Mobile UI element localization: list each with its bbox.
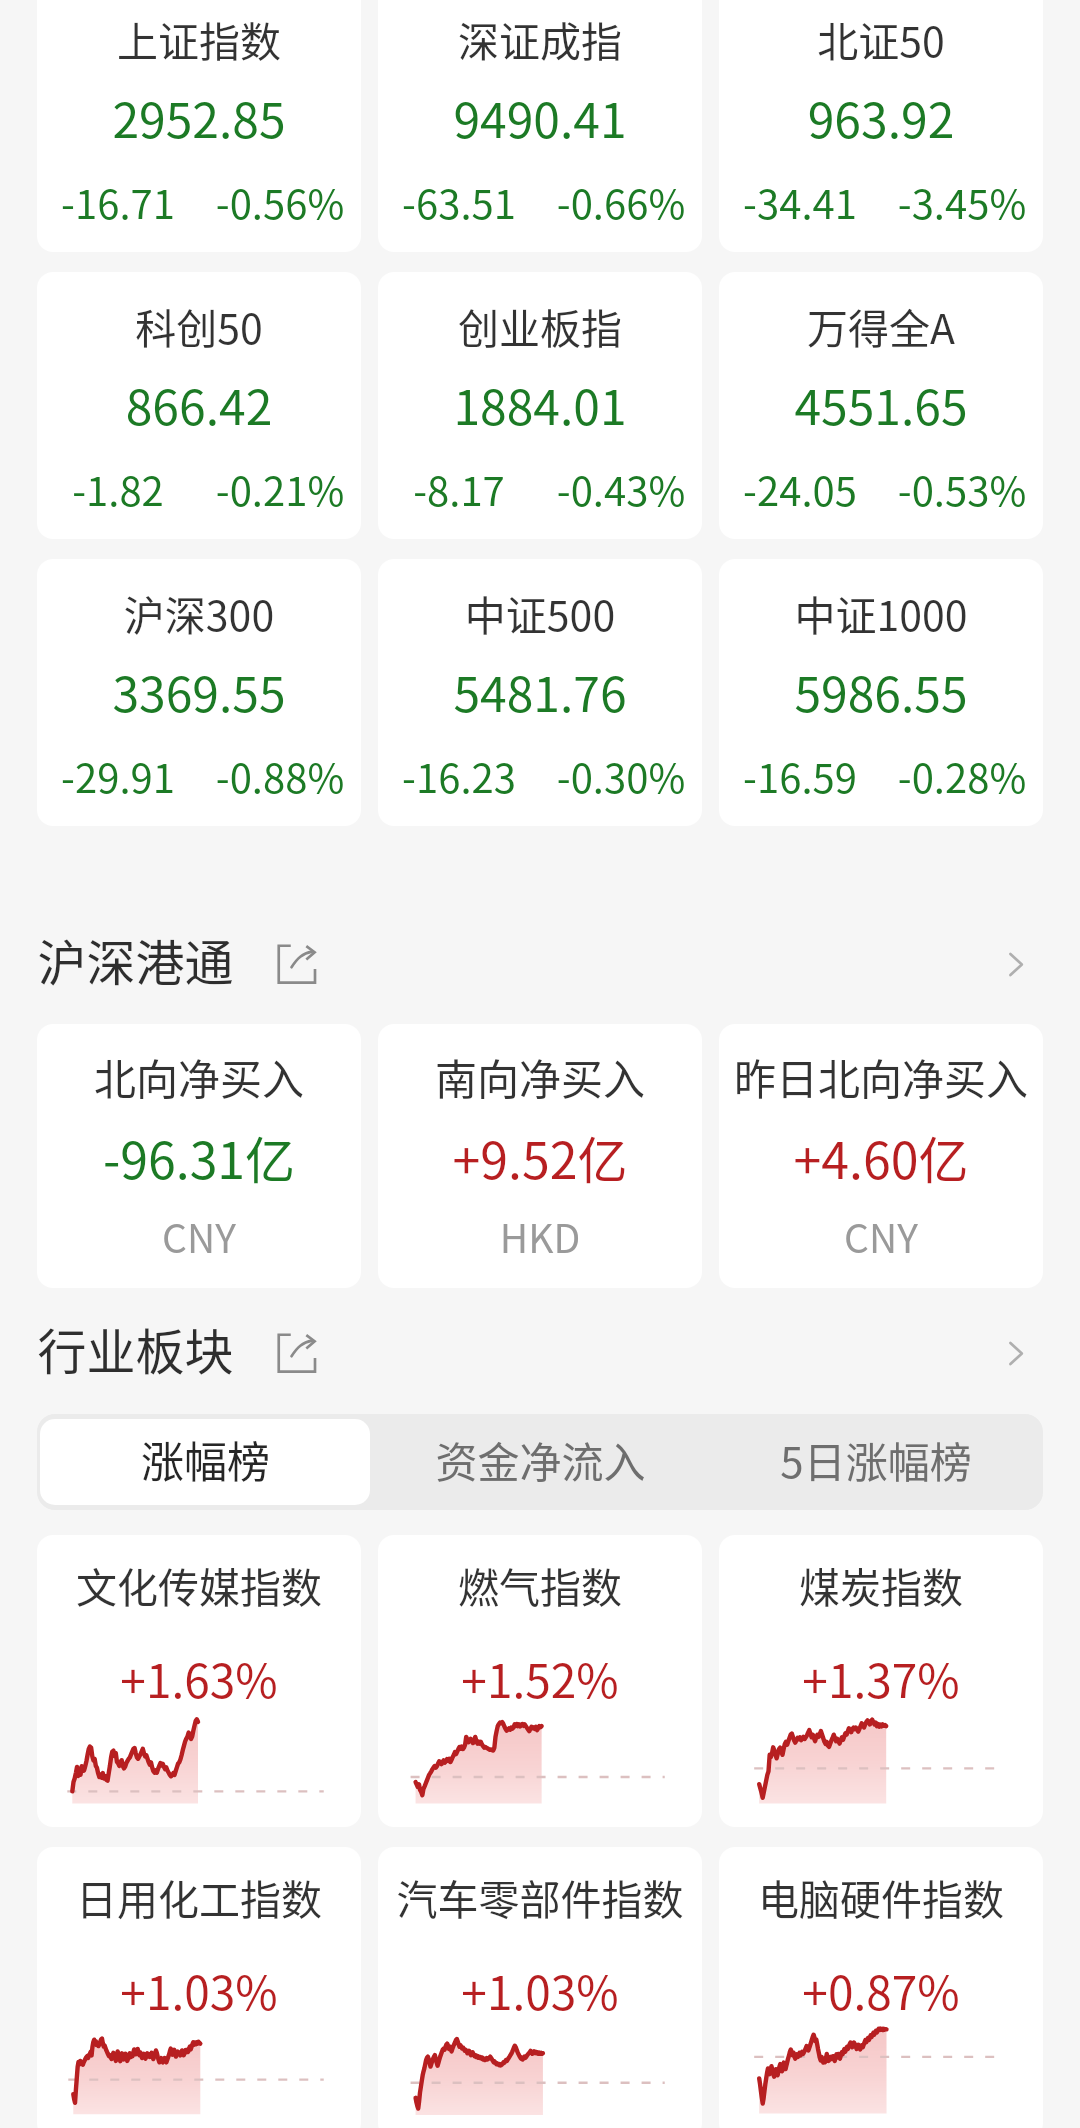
staticText: -96.31亿 [37,1121,361,1193]
staticText: 9490.41 [378,82,702,152]
button[interactable]: 上证指数 [37,0,361,252]
staticText: +1.37% [719,1645,1043,1712]
staticText: 南向净买入 [378,1046,702,1107]
staticText: 5986.55 [719,656,1043,726]
staticText: 3369.55 [37,656,361,726]
button[interactable]: 深证成指 [378,0,702,252]
button[interactable]: 北证50 [719,0,1043,252]
staticText: 科创50 [37,296,361,355]
button[interactable]: Share [269,937,323,991]
button[interactable]: 中证1000 [719,559,1043,826]
staticText: -63.51 [378,173,540,231]
button[interactable]: 电脑硬件指数 [719,1847,1043,2128]
button[interactable]: 文化传媒指数 [37,1535,361,1827]
staticText: -34.41 [719,173,881,231]
staticText: 沪深300 [37,583,361,642]
button[interactable]: 万得全A [719,272,1043,539]
staticText: +9.52亿 [378,1121,702,1193]
button[interactable]: 5日涨幅榜 [708,1414,1043,1510]
button[interactable]: More [991,1328,1041,1378]
staticText: -0.21% [199,460,361,518]
staticText: 燃气指数 [378,1555,702,1614]
staticText: 昨日北向净买入 [719,1046,1043,1107]
staticText: -0.66% [540,173,702,231]
button[interactable]: 中证500 [378,559,702,826]
staticText: 电脑硬件指数 [719,1867,1043,1926]
staticText: 上证指数 [37,9,361,68]
staticText: -16.71 [37,173,199,231]
staticText: 汽车零部件指数 [378,1867,702,1926]
staticText: 资金净流入 [435,1429,646,1490]
staticText: -3.45% [881,173,1043,231]
staticText: 866.42 [37,369,361,439]
staticText: CNY [37,1208,361,1264]
staticText: -0.56% [199,173,361,231]
button[interactable]: 沪深300 [37,559,361,826]
button[interactable]: 北向净买入 [37,1024,361,1288]
staticText: 中证1000 [719,583,1043,642]
button[interactable]: More [991,939,1041,989]
staticText: 行业板块 [37,1313,234,1384]
staticText: 文化传媒指数 [37,1555,361,1614]
button[interactable]: 资金净流入 [373,1414,708,1510]
staticText: -29.91 [37,747,199,805]
button[interactable]: Share [269,1326,323,1380]
staticText: 万得全A [719,296,1043,355]
button[interactable]: 南向净买入 [378,1024,702,1288]
button[interactable]: 创业板指 [378,272,702,539]
button[interactable]: 汽车零部件指数 [378,1847,702,2128]
staticText: -0.88% [199,747,361,805]
staticText: -16.59 [719,747,881,805]
staticText: 煤炭指数 [719,1555,1043,1614]
staticText: 涨幅榜 [141,1428,270,1490]
button[interactable]: 涨幅榜 [40,1419,370,1505]
staticText: +1.63% [37,1645,361,1712]
button[interactable]: 燃气指数 [378,1535,702,1827]
staticText: 沪深港通 [37,924,234,995]
staticText: -24.05 [719,460,881,518]
staticText: +0.87% [719,1957,1043,2024]
staticText: -8.17 [378,460,540,518]
staticText: -1.82 [37,460,199,518]
staticText: 4551.65 [719,369,1043,439]
staticText: -16.23 [378,747,540,805]
staticText: +1.52% [378,1645,702,1712]
staticText: +4.60亿 [719,1121,1043,1193]
staticText: +1.03% [37,1957,361,2024]
staticText: -0.28% [881,747,1043,805]
staticText: 创业板指 [378,296,702,355]
button[interactable]: 煤炭指数 [719,1535,1043,1827]
button[interactable]: 科创50 [37,272,361,539]
staticText: -0.53% [881,460,1043,518]
staticText: -0.30% [540,747,702,805]
staticText: 北向净买入 [37,1046,361,1107]
staticText: +1.03% [378,1957,702,2024]
staticText: 5日涨幅榜 [780,1429,972,1490]
staticText: -0.43% [540,460,702,518]
staticText: 中证500 [378,583,702,642]
staticText: 北证50 [719,9,1043,68]
staticText: 深证成指 [378,9,702,68]
staticText: 1884.01 [378,369,702,439]
staticText: 5481.76 [378,656,702,726]
button[interactable]: 日用化工指数 [37,1847,361,2128]
staticText: 2952.85 [37,82,361,152]
staticText: HKD [378,1208,702,1264]
staticText: CNY [719,1208,1043,1264]
staticText: 963.92 [719,82,1043,152]
button[interactable]: 昨日北向净买入 [719,1024,1043,1288]
staticText: 日用化工指数 [37,1867,361,1926]
